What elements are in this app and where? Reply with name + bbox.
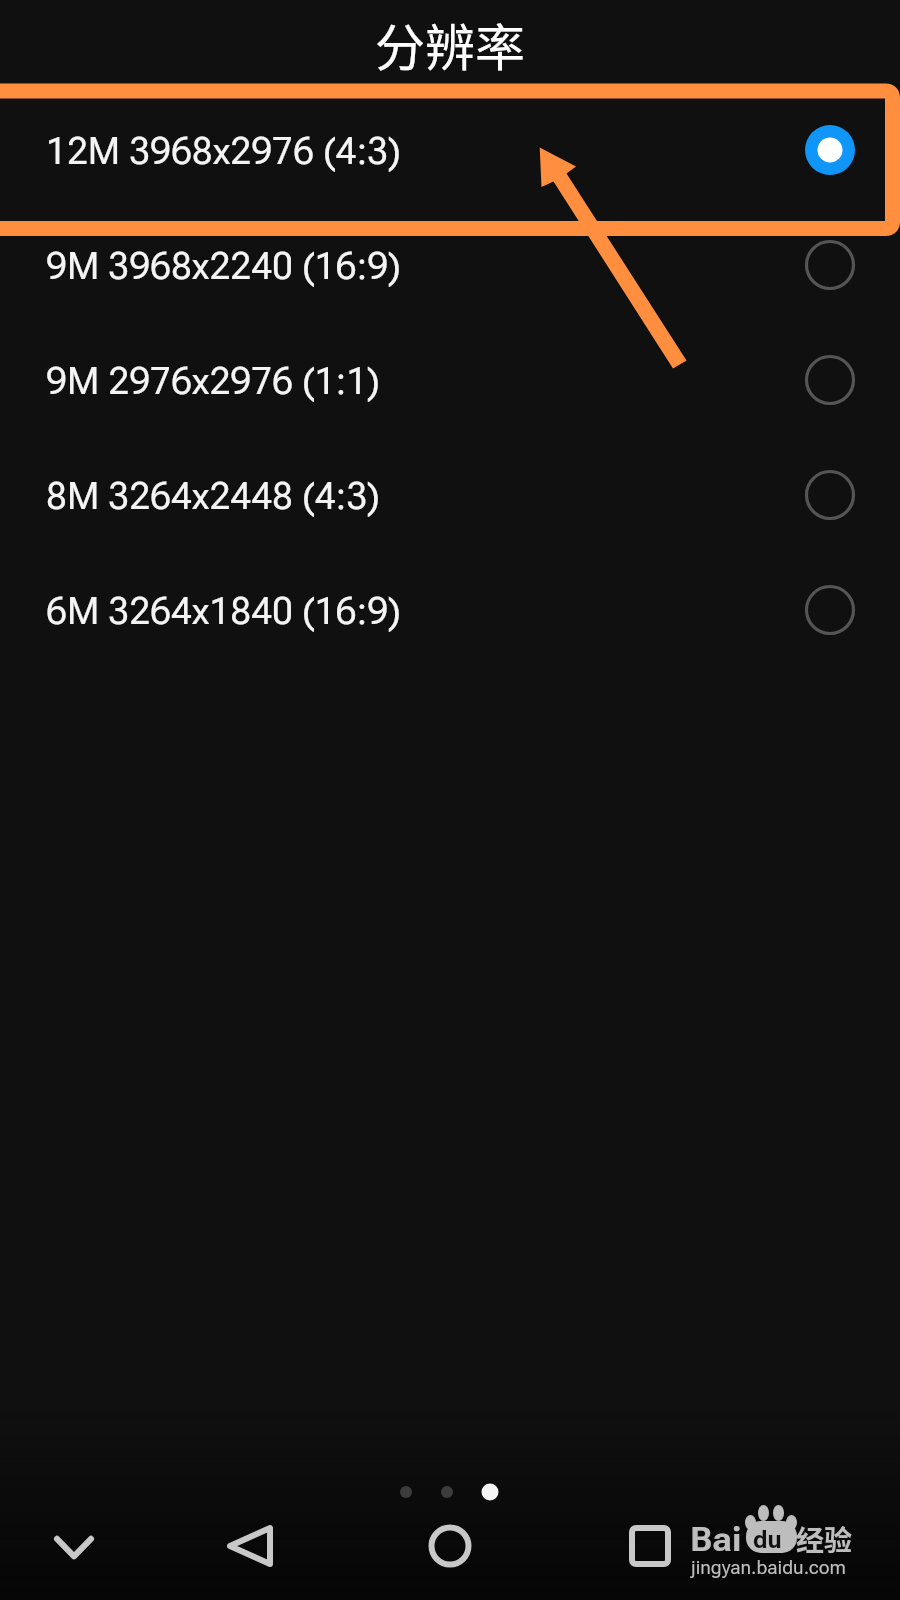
staticText: 分辨率 (0, 8, 900, 80)
staticText: 9M 2976x2976 (1:1) (46, 360, 380, 403)
staticText: Bai (690, 1519, 742, 1559)
staticText: 12M 3968x2976 (4:3) (46, 130, 401, 173)
button[interactable]: 9M 3968x2240 (16:9) (0, 209, 900, 324)
button[interactable]: Home (420, 1516, 480, 1576)
button[interactable]: Hide keyboard (44, 1516, 104, 1576)
button[interactable]: 9M 2976x2976 (1:1) (0, 324, 900, 439)
button[interactable]: Recents (620, 1516, 680, 1576)
staticText: 9M 3968x2240 (16:9) (46, 245, 401, 288)
staticText: 经验 (796, 1519, 853, 1560)
staticText: 8M 3264x2448 (4:3) (46, 475, 380, 518)
button[interactable]: Back (220, 1516, 280, 1576)
button[interactable]: 12M 3968x2976 (4:3) (0, 94, 900, 209)
button[interactable]: 6M 3264x1840 (16:9) (0, 554, 900, 669)
staticText: 6M 3264x1840 (16:9) (46, 590, 401, 633)
button[interactable]: 8M 3264x2448 (4:3) (0, 439, 900, 554)
staticText: du (753, 1526, 782, 1554)
staticText: jingyan.baidu.com (691, 1556, 846, 1578)
